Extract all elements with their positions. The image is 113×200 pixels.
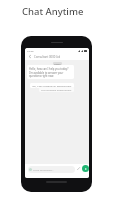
staticText: Chat Anytime xyxy=(22,5,84,18)
staticText: This schedule appointment xyxy=(41,88,72,91)
staticText: 10:30 xyxy=(27,49,34,52)
button[interactable]: Write something... xyxy=(28,166,75,173)
staticText: Today xyxy=(54,62,61,65)
button[interactable]: Yes, I am schedule an appointment xyxy=(30,83,74,88)
button[interactable]: This schedule appointment xyxy=(39,87,74,92)
button[interactable]: Hello, how can I help you today? I'm ava… xyxy=(27,65,74,79)
staticText: Hello, how can I help you today? I'm ava… xyxy=(29,67,72,77)
button[interactable]: Back xyxy=(25,53,34,60)
staticText: Write something... xyxy=(33,168,54,171)
button[interactable]: Attach file xyxy=(76,166,81,171)
staticText: Consultant 0000 Ltd xyxy=(34,55,61,59)
button[interactable]: Send message xyxy=(82,165,89,172)
staticText: Yes, I am schedule an appointment xyxy=(32,84,72,87)
